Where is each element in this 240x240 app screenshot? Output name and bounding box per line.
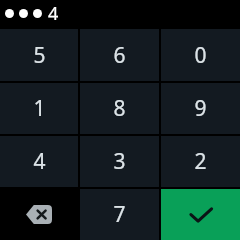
button[interactable]: Confirm: [161, 189, 240, 240]
staticText: 4: [33, 147, 46, 176]
button[interactable]: 4: [0, 136, 78, 187]
staticText: 0: [194, 41, 207, 70]
button[interactable]: 1: [0, 83, 78, 134]
staticText: 5: [33, 41, 46, 70]
staticText: 8: [113, 94, 126, 123]
staticText: 6: [113, 41, 126, 70]
staticText: 2: [194, 147, 207, 176]
staticText: 1: [33, 94, 46, 123]
button[interactable]: 3: [80, 136, 159, 187]
button[interactable]: 9: [161, 83, 240, 134]
button[interactable]: Backspace: [0, 189, 78, 240]
button[interactable]: 6: [80, 29, 159, 81]
staticText: 4: [48, 1, 59, 26]
button[interactable]: 8: [80, 83, 159, 134]
staticText: 9: [194, 94, 207, 123]
staticText: 7: [113, 200, 126, 229]
staticText: 3: [113, 147, 126, 176]
button[interactable]: 2: [161, 136, 240, 187]
button[interactable]: 0: [161, 29, 240, 81]
button[interactable]: 7: [80, 189, 159, 240]
button[interactable]: 5: [0, 29, 78, 81]
